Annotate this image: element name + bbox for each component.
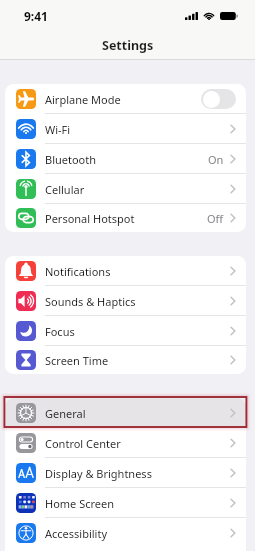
button[interactable]: Screen Time <box>5 346 246 374</box>
staticText: Off <box>207 211 224 226</box>
button[interactable]: Display & Brightness <box>5 458 246 488</box>
button[interactable]: Focus <box>5 316 246 346</box>
staticText: Personal Hotspot <box>45 211 135 226</box>
button[interactable]: Bluetooth <box>5 144 246 174</box>
staticText: General <box>45 406 86 421</box>
staticText: Wi-Fi <box>45 122 71 137</box>
staticText: Settings <box>102 37 154 54</box>
staticText: Accessibility <box>45 526 108 541</box>
staticText: Airplane Mode <box>45 92 121 107</box>
button[interactable]: Personal Hotspot <box>5 204 246 232</box>
staticText: Notifications <box>45 264 111 279</box>
button[interactable]: Accessibility <box>5 518 246 548</box>
staticText: Sounds & Haptics <box>45 294 136 309</box>
button[interactable]: Airplane Mode toggle <box>201 89 236 109</box>
button[interactable]: Control Center <box>5 428 246 458</box>
staticText: Screen Time <box>45 353 109 368</box>
button[interactable]: Airplane Mode <box>5 84 246 114</box>
staticText: 9:41 <box>24 8 48 24</box>
staticText: Bluetooth <box>45 152 97 167</box>
staticText: Cellular <box>45 182 85 197</box>
staticText: Home Screen <box>45 496 115 511</box>
staticText: Focus <box>45 324 75 339</box>
button[interactable]: Home Screen <box>5 488 246 518</box>
staticText: Control Center <box>45 436 121 451</box>
staticText: On <box>208 152 224 167</box>
staticText: Display & Brightness <box>45 466 152 481</box>
button[interactable]: Cellular <box>5 174 246 204</box>
button[interactable]: Notifications <box>5 256 246 286</box>
button[interactable]: General <box>5 398 246 428</box>
button[interactable]: Sounds & Haptics <box>5 286 246 316</box>
button[interactable]: Wi-Fi <box>5 114 246 144</box>
